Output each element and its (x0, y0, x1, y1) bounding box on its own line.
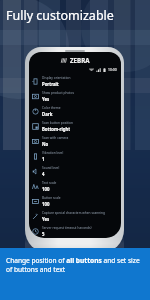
staticText: ZEBRA (70, 56, 90, 64)
other: Sound level (32, 168, 39, 175)
staticText: Button scale (42, 196, 61, 200)
staticText: Change position of all buttons and set s… (6, 256, 142, 274)
other: Scan with camera (32, 138, 39, 145)
button[interactable]: Text scale (29, 179, 121, 194)
staticText: Dark (42, 111, 53, 117)
other: Show product photos (32, 93, 39, 100)
staticText: 1 (42, 156, 45, 162)
staticText: Portrait (42, 81, 59, 87)
button[interactable]: Vibration level (29, 149, 121, 164)
staticText: 4 (42, 171, 45, 177)
staticText: Vibration level (42, 151, 64, 155)
other: Scan button position (32, 123, 39, 130)
staticText: Scan with camera (42, 136, 69, 140)
button[interactable]: Sound level (29, 164, 121, 179)
button[interactable]: Server request timeout (seconds) (29, 224, 121, 238)
other: Vibration level (32, 153, 39, 160)
staticText: 100 (42, 186, 50, 192)
button[interactable]: Scan button position (29, 119, 121, 134)
staticText: Fully customizable (6, 7, 114, 24)
staticText: Show product photos (42, 91, 74, 95)
staticText: Sound level (42, 166, 60, 170)
button[interactable]: Button scale (29, 194, 121, 209)
button[interactable]: Display orientation (29, 74, 121, 89)
staticText: Bottom-right (42, 126, 71, 132)
staticText: 100 (42, 201, 50, 207)
button[interactable]: Color theme (29, 104, 121, 119)
staticText: No (42, 141, 49, 147)
button[interactable]: Scan with camera (29, 134, 121, 149)
staticText: Color theme (42, 106, 61, 110)
staticText: Capture special characters when scanning (42, 211, 105, 215)
staticText: Yes (42, 96, 50, 102)
staticText: Text scale (42, 181, 57, 185)
other: Display orientation (32, 78, 39, 85)
other: Server request timeout (seconds) (32, 228, 39, 235)
other: Text scale (32, 183, 39, 190)
button[interactable]: Capture special characters when scanning (29, 209, 121, 224)
button[interactable]: Show product photos (29, 89, 121, 104)
other: Button scale (32, 198, 39, 205)
staticText: 5 (42, 231, 45, 237)
staticText: Yes (42, 216, 50, 222)
staticText: Server request timeout (seconds) (42, 226, 92, 230)
staticText: 10:00 (108, 67, 117, 72)
staticText: Scan button position (42, 121, 73, 125)
other: Capture special characters when scanning (32, 213, 39, 220)
other: Color theme (32, 108, 39, 115)
staticText: Display orientation (42, 76, 71, 80)
